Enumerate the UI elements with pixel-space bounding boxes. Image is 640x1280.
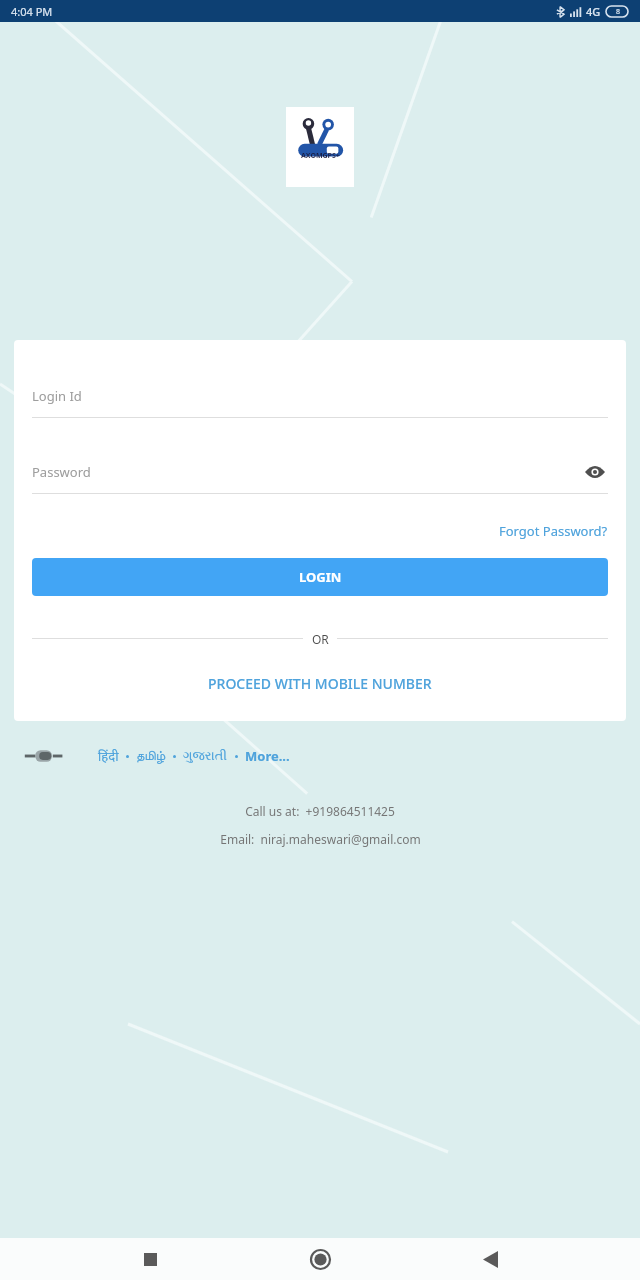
staticText: Email: niraj.maheswari@gmail.com xyxy=(220,831,421,847)
staticText: 4G xyxy=(586,4,601,19)
button[interactable]: Login Id xyxy=(32,378,608,414)
button[interactable]: Password xyxy=(32,454,608,490)
button[interactable]: தமிழ் xyxy=(136,750,166,763)
button[interactable]: हिंदी xyxy=(98,747,119,765)
staticText: AXOMGPS+ xyxy=(301,151,340,161)
staticText: ગુજરાતી xyxy=(183,750,228,763)
button[interactable]: Show password xyxy=(582,459,608,485)
staticText: Forgot Password? xyxy=(499,522,608,540)
button[interactable]: ગુજરાતી xyxy=(183,750,228,763)
staticText: LOGIN xyxy=(299,568,342,586)
button[interactable]: Forgot Password? xyxy=(499,522,608,540)
button[interactable]: PROCEED WITH MOBILE NUMBER xyxy=(32,674,608,693)
button[interactable]: LOGIN xyxy=(32,558,608,596)
staticText: Login Id xyxy=(32,387,82,405)
button[interactable]: More... xyxy=(245,747,290,765)
staticText: PROCEED WITH MOBILE NUMBER xyxy=(208,674,432,693)
staticText: Password xyxy=(32,463,91,481)
staticText: தமிழ் xyxy=(136,750,166,763)
button[interactable]: Recent apps xyxy=(130,1239,170,1279)
staticText: Call us at: +919864511425 xyxy=(245,803,395,819)
staticText: More... xyxy=(245,747,290,765)
staticText: 8 xyxy=(616,7,621,17)
staticText: हिंदी xyxy=(98,747,119,765)
button[interactable]: Home xyxy=(300,1239,340,1279)
staticText: 4:04 PM xyxy=(11,4,53,19)
button[interactable]: Back xyxy=(470,1239,510,1279)
staticText: OR xyxy=(312,631,329,647)
